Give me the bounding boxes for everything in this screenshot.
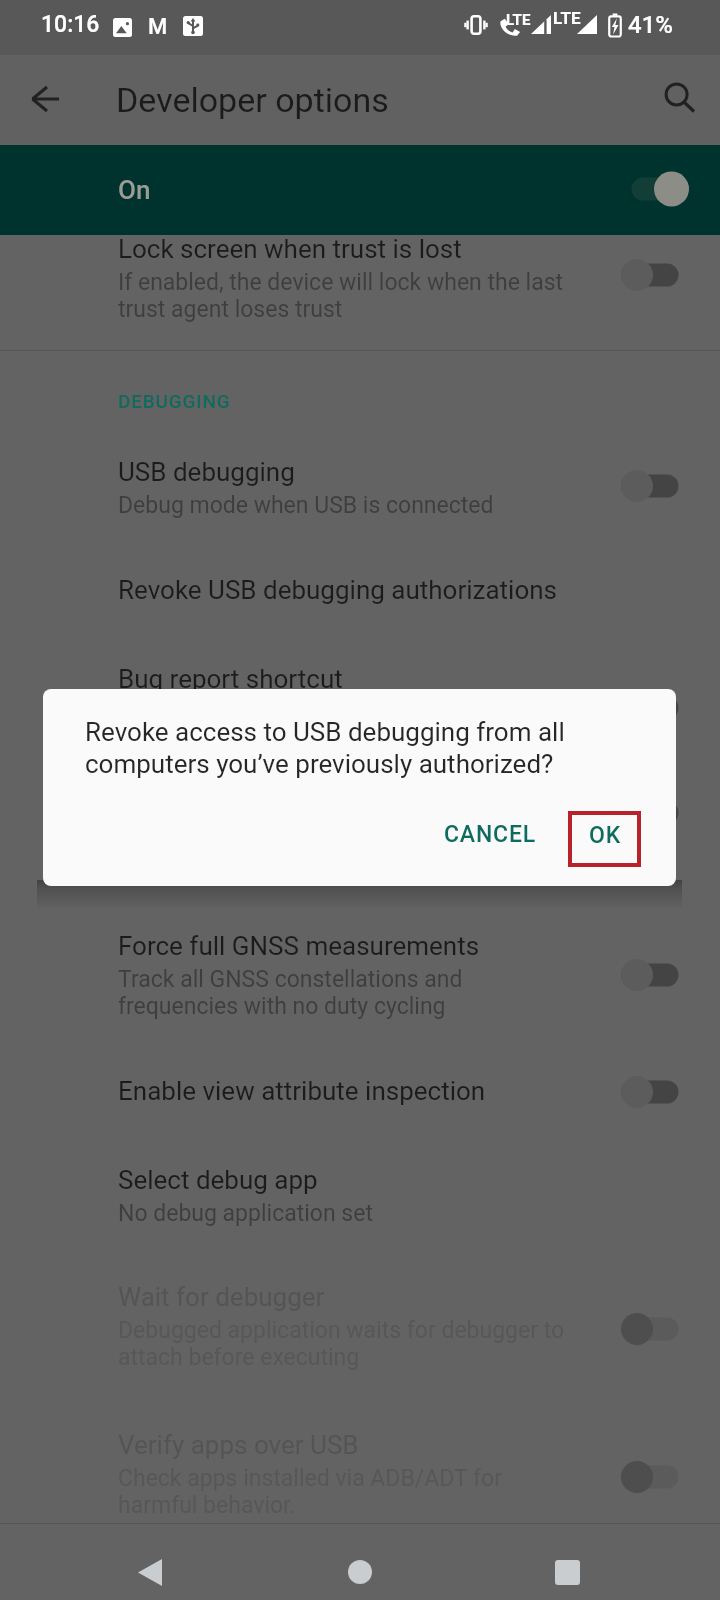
staticText: Verify apps over USB xyxy=(118,1430,359,1460)
button[interactable]: Search xyxy=(645,75,715,145)
button[interactable]: Enable Bluetooth HCI snoop log xyxy=(0,760,720,867)
button[interactable]: Revoke USB debugging authorizations xyxy=(0,553,720,631)
button[interactable]: Home xyxy=(324,1536,396,1600)
staticText: Enable view attribute inspection xyxy=(118,1076,486,1106)
staticText: Select debug app xyxy=(118,1165,318,1195)
staticText: CANCEL xyxy=(444,821,536,848)
staticText: Debugged application waits for debugger … xyxy=(118,1317,565,1371)
button[interactable]: Wait for debugger xyxy=(0,1260,720,1394)
staticText: Developer options xyxy=(116,80,389,120)
staticText: On xyxy=(118,175,151,205)
staticText: If enabled, the device will lock when th… xyxy=(118,269,564,323)
button[interactable]: Lock screen when trust is lost xyxy=(0,212,720,346)
button[interactable]: Back xyxy=(114,1536,186,1600)
staticText: LTE xyxy=(506,11,531,29)
staticText: LTE xyxy=(553,8,581,28)
staticText: Force full GNSS measurements xyxy=(118,931,480,961)
staticText: Debug mode when USB is connected xyxy=(118,492,494,519)
button[interactable]: Bug report shortcut xyxy=(0,642,720,776)
staticText: DEBUGGING xyxy=(118,390,231,412)
button[interactable]: USB debugging xyxy=(0,435,720,542)
button[interactable]: Select debug app xyxy=(0,1143,720,1250)
button[interactable]: Verify apps over USB xyxy=(0,1408,720,1542)
button[interactable]: Enable view attribute inspection xyxy=(0,1054,720,1132)
staticText: Track all GNSS constellations and freque… xyxy=(118,966,463,1020)
staticText: Capture all bluetooth HCI packets in a f… xyxy=(118,817,539,844)
staticText: Bug report shortcut xyxy=(118,664,343,694)
staticText: Show a button in the power menu for taki… xyxy=(118,699,563,753)
button[interactable]: CANCEL xyxy=(428,806,551,862)
button[interactable]: Recents xyxy=(531,1536,603,1600)
button[interactable]: Back xyxy=(10,75,80,145)
staticText: Check apps installed via ADB/ADT for har… xyxy=(118,1465,502,1519)
staticText: Revoke USB debugging authorizations xyxy=(118,575,558,605)
button[interactable]: OK xyxy=(568,807,641,863)
staticText: Wait for debugger xyxy=(118,1282,325,1312)
staticText: Revoke access to USB debugging from all … xyxy=(85,717,565,779)
staticText: M xyxy=(148,14,168,40)
staticText: USB debugging xyxy=(118,457,295,487)
staticText: No debug application set xyxy=(118,1200,373,1227)
staticText: Lock screen when trust is lost xyxy=(118,234,462,264)
staticText: OK xyxy=(589,822,621,849)
staticText: 10:16 xyxy=(41,11,100,38)
button[interactable]: Force full GNSS measurements xyxy=(0,909,720,1043)
button[interactable]: On xyxy=(0,145,720,235)
staticText: 41% xyxy=(628,11,673,39)
